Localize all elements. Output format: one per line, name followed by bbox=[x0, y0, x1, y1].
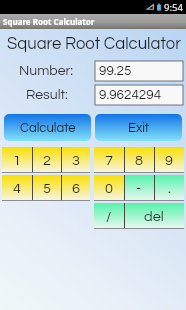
button[interactable]: 6 bbox=[61, 175, 90, 201]
staticText: 7 bbox=[105, 153, 113, 168]
button[interactable]: 5 bbox=[32, 175, 61, 201]
button[interactable]: 3 bbox=[61, 147, 90, 173]
staticText: Calculate bbox=[20, 121, 76, 134]
button[interactable]: . bbox=[154, 175, 184, 201]
staticText: 99.25 bbox=[99, 64, 132, 78]
staticText: 3 bbox=[72, 153, 80, 168]
button[interactable]: 9.9624294 bbox=[95, 85, 183, 105]
staticText: 4 bbox=[13, 181, 21, 196]
staticText: 1 bbox=[13, 153, 21, 168]
staticText: 9 bbox=[165, 153, 173, 168]
staticText: del bbox=[144, 209, 164, 224]
staticText: Square Root Calculator bbox=[7, 35, 186, 52]
button[interactable]: 99.25 bbox=[95, 61, 183, 81]
staticText: Number: bbox=[19, 64, 74, 78]
staticText: . bbox=[168, 181, 171, 196]
button[interactable]: Exit bbox=[95, 114, 182, 141]
button[interactable]: 1 bbox=[2, 147, 32, 173]
staticText: - bbox=[136, 181, 142, 196]
staticText: Exit bbox=[128, 121, 150, 134]
button[interactable]: 7 bbox=[94, 147, 124, 173]
button[interactable]: - bbox=[124, 175, 154, 201]
button[interactable]: / bbox=[94, 203, 124, 229]
button[interactable]: 0 bbox=[94, 175, 124, 201]
staticText: 5 bbox=[43, 181, 51, 196]
button[interactable]: 2 bbox=[32, 147, 61, 173]
staticText: 2 bbox=[43, 153, 51, 168]
button[interactable]: 9 bbox=[154, 147, 184, 173]
staticText: / bbox=[106, 209, 112, 224]
staticText: 9:54 bbox=[164, 1, 183, 14]
staticText: Square Root Calculator bbox=[3, 16, 95, 27]
button[interactable]: del bbox=[124, 203, 184, 229]
button[interactable]: 8 bbox=[124, 147, 154, 173]
staticText: Result: bbox=[26, 88, 68, 102]
staticText: 9.9624294 bbox=[99, 88, 162, 102]
button[interactable]: Calculate bbox=[4, 114, 91, 141]
staticText: 0 bbox=[105, 181, 113, 196]
button[interactable]: 4 bbox=[2, 175, 32, 201]
staticText: 6 bbox=[72, 181, 80, 196]
staticText: 8 bbox=[135, 153, 143, 168]
